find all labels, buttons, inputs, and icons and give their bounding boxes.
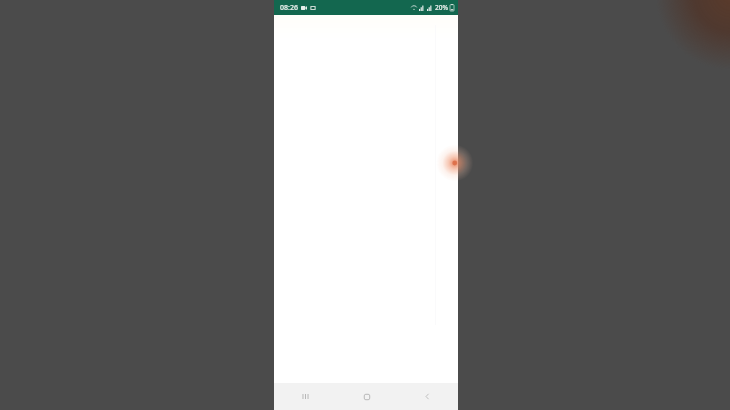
button[interactable]: Recent apps xyxy=(274,383,336,410)
staticText: 20% xyxy=(435,3,448,12)
staticText: 08:26 xyxy=(280,3,298,13)
button[interactable]: Home xyxy=(336,383,397,410)
